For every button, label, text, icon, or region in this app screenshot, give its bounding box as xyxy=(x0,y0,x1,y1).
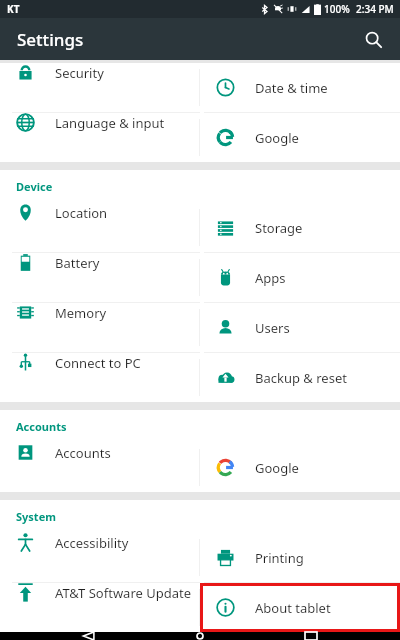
staticText: Google xyxy=(255,129,299,147)
staticText: Security xyxy=(55,64,104,82)
button[interactable]: Printing xyxy=(200,533,400,582)
button[interactable]: Recent apps xyxy=(289,632,333,640)
button[interactable]: Location xyxy=(0,203,199,222)
staticText: Apps xyxy=(255,269,286,287)
staticText: Connect to PC xyxy=(55,354,141,372)
button[interactable]: Accessibility xyxy=(0,533,199,552)
button[interactable]: Apps xyxy=(200,253,400,302)
staticText: Backup & reset xyxy=(255,369,347,387)
button[interactable]: AT&T Software Update xyxy=(0,583,199,602)
staticText: 100% xyxy=(324,2,350,16)
button[interactable]: Search xyxy=(356,22,390,56)
button[interactable]: Date & time xyxy=(200,63,400,112)
staticText: Location xyxy=(55,204,108,222)
staticText: KT xyxy=(7,2,20,16)
button[interactable]: Users xyxy=(200,303,400,352)
staticText: Accounts xyxy=(16,419,67,434)
staticText: Device xyxy=(16,179,53,194)
button[interactable]: Connect to PC xyxy=(0,353,199,372)
staticText: Date & time xyxy=(255,79,328,97)
staticText: Accessibility xyxy=(55,534,129,552)
staticText: 2:34 PM xyxy=(356,2,394,16)
button[interactable]: Security xyxy=(0,63,199,82)
button[interactable]: Memory xyxy=(0,303,199,322)
staticText: Settings xyxy=(17,28,84,51)
button[interactable]: Language & input xyxy=(0,113,199,132)
button[interactable]: Google xyxy=(200,443,400,492)
button[interactable]: About tablet xyxy=(200,583,400,632)
button[interactable]: Battery xyxy=(0,253,199,272)
button[interactable]: Back xyxy=(67,632,111,640)
staticText: Language & input xyxy=(55,114,165,132)
staticText: Accounts xyxy=(55,444,111,462)
staticText: Users xyxy=(255,319,290,337)
button[interactable]: Backup & reset xyxy=(200,353,400,402)
staticText: About tablet xyxy=(255,599,331,617)
button[interactable]: Google xyxy=(200,113,400,162)
staticText: Printing xyxy=(255,549,304,567)
button[interactable]: Storage xyxy=(200,203,400,252)
button[interactable]: Accounts xyxy=(0,443,199,462)
staticText: Battery xyxy=(55,254,100,272)
staticText: Storage xyxy=(255,219,303,237)
staticText: Google xyxy=(255,459,299,477)
staticText: System xyxy=(16,509,56,524)
staticText: Memory xyxy=(55,304,107,322)
button[interactable]: Home xyxy=(178,632,222,640)
staticText: AT&T Software Update xyxy=(55,584,192,602)
